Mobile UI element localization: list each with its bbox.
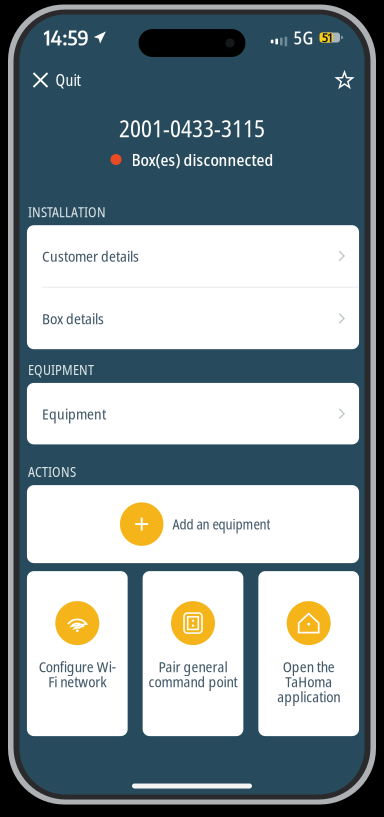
- staticText: Box(es) disconnected: [131, 148, 273, 171]
- staticText: 2001-0433-3115: [119, 112, 265, 144]
- staticText: Open the: [283, 656, 335, 677]
- staticText: Customer details: [42, 246, 139, 266]
- staticText: Box details: [42, 308, 104, 329]
- button[interactable]: Quit: [31, 61, 82, 99]
- staticText: EQUIPMENT: [28, 360, 94, 379]
- staticText: Equipment: [42, 403, 106, 424]
- staticText: application: [277, 686, 340, 707]
- staticText: Configure Wi-: [39, 656, 116, 677]
- staticText: Add an equipment: [172, 515, 270, 534]
- staticText: 5G: [293, 25, 313, 50]
- button[interactable]: Add an equipment: [27, 485, 359, 563]
- staticText: Pair general: [158, 656, 227, 677]
- staticText: INSTALLATION: [28, 202, 106, 221]
- button[interactable]: Configure Wi-: [27, 571, 128, 736]
- staticText: 51: [322, 30, 332, 45]
- staticText: Quit: [55, 69, 80, 91]
- button[interactable]: Pair general: [143, 571, 243, 736]
- button[interactable]: Customer details: [27, 225, 359, 287]
- staticText: TaHoma: [285, 671, 332, 692]
- staticText: ACTIONS: [28, 462, 76, 481]
- button[interactable]: Open the: [258, 571, 359, 736]
- button[interactable]: Equipment: [27, 383, 359, 444]
- staticText: 14:59: [43, 25, 88, 50]
- staticText: command point: [148, 671, 237, 692]
- button[interactable]: Favourite: [331, 61, 357, 99]
- button[interactable]: Box details: [27, 288, 359, 349]
- staticText: Fi network: [48, 671, 106, 692]
